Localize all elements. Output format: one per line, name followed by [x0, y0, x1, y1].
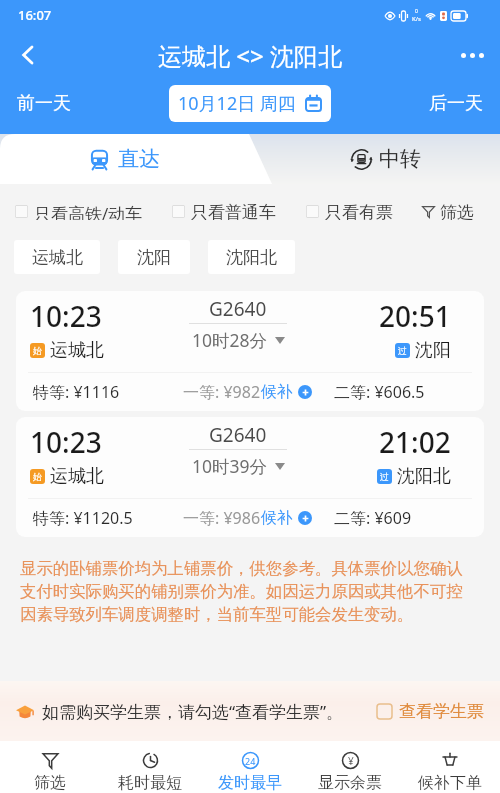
staticText: 运城北 <> 沈阳北: [158, 39, 342, 72]
button[interactable]: 中转: [272, 134, 500, 184]
staticText: 16:07: [18, 6, 52, 24]
staticText: 一等: ¥982: [183, 381, 261, 403]
staticText: 只看高铁/动车: [34, 202, 143, 220]
button[interactable]: 10:23: [16, 417, 484, 537]
staticText: 始: [33, 471, 42, 482]
staticText: 沈阳北: [397, 465, 451, 488]
staticText: 过: [380, 471, 389, 482]
staticText: 特等: ¥1120.5: [33, 507, 133, 529]
staticText: 二等: ¥609: [334, 507, 412, 529]
staticText: 显示余票: [318, 773, 382, 793]
staticText: 中转: [379, 146, 421, 172]
staticText: 20:51: [379, 297, 451, 335]
button[interactable]: More options: [444, 30, 500, 80]
button[interactable]: 只看有票: [306, 202, 393, 220]
staticText: 耗时最短: [118, 773, 182, 793]
staticText: 运城北: [50, 339, 104, 362]
staticText: 一等: ¥986: [183, 507, 261, 529]
staticText: G2640: [209, 422, 267, 448]
button[interactable]: ¥: [300, 741, 400, 793]
staticText: 只看普通车: [191, 202, 276, 220]
staticText: 发时最早: [218, 773, 282, 793]
staticText: 查看学生票: [399, 701, 484, 722]
staticText: 筛选: [34, 773, 66, 793]
staticText: 筛选: [440, 202, 474, 220]
button[interactable]: 运城北: [14, 240, 100, 274]
button[interactable]: 筛选: [0, 741, 100, 793]
staticText: 二等: ¥606.5: [334, 381, 425, 403]
staticText: 候补: [261, 508, 293, 528]
staticText: 特等: ¥1116: [33, 381, 120, 403]
button[interactable]: 筛选: [422, 202, 474, 220]
button[interactable]: 耗时最短: [100, 741, 200, 793]
staticText: 0: [415, 8, 418, 15]
button[interactable]: 后一天: [417, 84, 495, 123]
button[interactable]: 沈阳: [118, 240, 190, 274]
staticText: 沈阳: [415, 339, 451, 362]
button[interactable]: 沈阳北: [208, 240, 295, 274]
staticText: G2640: [209, 296, 267, 322]
button[interactable]: 直达: [0, 134, 249, 184]
button[interactable]: 只看高铁/动车: [15, 202, 143, 220]
button[interactable]: 前一天: [5, 84, 83, 123]
staticText: ¥: [348, 754, 354, 768]
button[interactable]: Back: [0, 30, 56, 80]
staticText: 过: [398, 345, 407, 356]
button[interactable]: 只看普通车: [172, 202, 276, 220]
staticText: 10月12日 周四: [178, 91, 296, 116]
staticText: 运城北: [50, 465, 104, 488]
staticText: 10时28分: [192, 328, 268, 352]
staticText: 沈阳北: [226, 247, 277, 268]
staticText: 21:02: [379, 423, 451, 461]
staticText: 运城北: [32, 247, 83, 268]
staticText: 始: [33, 345, 42, 356]
staticText: K/s: [412, 15, 421, 23]
button[interactable]: 10:23: [16, 291, 484, 411]
staticText: 只看有票: [325, 202, 393, 220]
staticText: 24: [245, 755, 256, 767]
button[interactable]: 候补下单: [400, 741, 500, 793]
staticText: 沈阳: [137, 247, 171, 268]
staticText: 10:23: [30, 297, 102, 335]
staticText: 显示的卧铺票价均为上铺票价，供您参考。具体票价以您确认支付时实际购买的铺别票价为…: [20, 558, 466, 625]
button[interactable]: 24: [200, 741, 300, 793]
staticText: 10时39分: [192, 454, 268, 478]
button[interactable]: 10月12日 周四: [169, 85, 331, 122]
staticText: 候补: [261, 382, 293, 402]
staticText: 直达: [118, 146, 160, 172]
button[interactable]: 查看学生票: [377, 701, 484, 722]
staticText: 候补下单: [418, 773, 482, 793]
staticText: 10:23: [30, 423, 102, 461]
staticText: 如需购买学生票，请勾选“查看学生票”。: [42, 700, 344, 723]
